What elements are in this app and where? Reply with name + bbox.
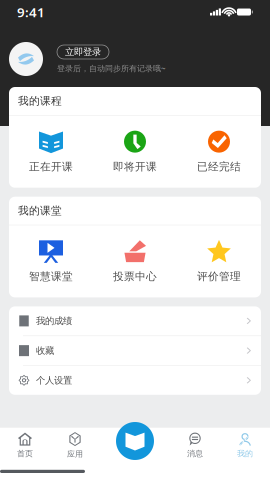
button[interactable]: 收藏: [9, 336, 261, 365]
button[interactable]: 正在开课: [9, 116, 93, 188]
staticText: 投票中心: [113, 270, 157, 283]
staticText: 我的课堂: [18, 204, 62, 217]
staticText: 立即登录: [65, 46, 101, 58]
staticText: 我的成绩: [36, 315, 72, 327]
staticText: 9:41: [17, 3, 45, 21]
button[interactable]: 立即登录: [57, 45, 109, 59]
button[interactable]: 应用: [50, 427, 100, 463]
button[interactable]: 课程: [116, 422, 154, 460]
button[interactable]: 消息: [170, 427, 220, 463]
button[interactable]: 智慧课堂: [9, 225, 93, 297]
staticText: 智慧课堂: [29, 270, 73, 283]
button[interactable]: 投票中心: [93, 225, 177, 297]
staticText: 我的课程: [18, 94, 62, 107]
staticText: 正在开课: [29, 160, 73, 173]
button[interactable]: 首页: [0, 427, 50, 463]
staticText: 应用: [67, 449, 83, 459]
button[interactable]: 评价管理: [177, 225, 261, 297]
staticText: 首页: [17, 449, 33, 458]
staticText: 已经完结: [197, 160, 241, 173]
staticText: 评价管理: [197, 270, 241, 283]
staticText: 收藏: [36, 345, 54, 356]
staticText: 即将开课: [113, 160, 157, 173]
button[interactable]: 我的: [220, 427, 270, 463]
staticText: 登录后，自动同步所有记录哦~: [57, 63, 166, 74]
staticText: 我的: [237, 449, 253, 458]
button[interactable]: 我的成绩: [9, 306, 261, 335]
button[interactable]: 个人设置: [9, 366, 261, 395]
staticText: 个人设置: [36, 375, 72, 386]
button[interactable]: 已经完结: [177, 116, 261, 188]
button[interactable]: 即将开课: [93, 116, 177, 188]
staticText: 消息: [187, 449, 203, 458]
